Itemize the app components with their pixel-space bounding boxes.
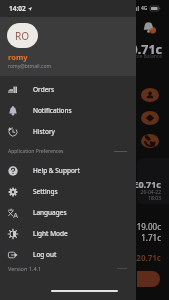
button[interactable]: History [0,121,136,142]
staticText: Help & Support [33,166,80,175]
button[interactable]: Notifications [0,100,136,121]
staticText: Settings [33,187,58,196]
staticText: 18:03 [0,195,161,202]
staticText: £0.71c [0,178,161,190]
staticText: Available Balance [0,53,162,60]
button[interactable]: Languages [0,202,136,223]
staticText: Notifications [33,106,72,115]
staticText: Orders [33,85,55,94]
staticText: History [33,127,55,136]
button[interactable]: Call [141,134,159,148]
staticText: Languages [33,208,67,217]
button[interactable]: Pay now [137,271,160,287]
staticText: £0.71c [0,41,162,58]
button[interactable]: Light Mode [0,223,136,244]
staticText: RO [15,29,30,43]
staticText: Application Preferences [8,148,64,155]
staticText: romy@btmail.com [8,63,52,70]
staticText: Version 1.4.1 [8,265,42,272]
staticText: 19.00c [0,221,161,232]
button[interactable]: Help & Support [0,160,136,181]
staticText: romy [8,52,28,62]
button[interactable]: Orders [0,79,136,100]
staticText: 1.71c [0,232,161,243]
staticText: Light Mode [33,229,68,238]
button[interactable]: Notifications [143,21,156,34]
staticText: £20.71c [0,252,161,263]
staticText: Log out [33,250,57,259]
staticText: 20-04-22 [0,189,161,196]
button[interactable]: Pay [141,111,159,125]
button[interactable]: Send [141,88,159,102]
staticText: 14:02 [9,4,26,13]
button[interactable]: Log out [0,244,136,265]
button[interactable]: Settings [0,181,136,202]
staticText: 4G [141,5,148,12]
